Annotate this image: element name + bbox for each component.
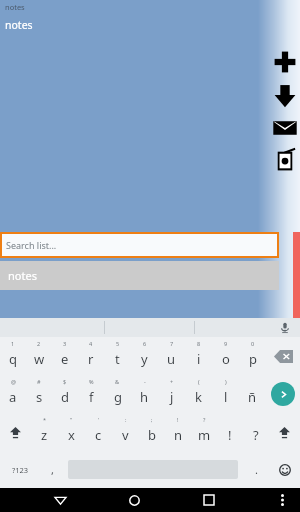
button[interactable]: ! — [217, 413, 243, 451]
button[interactable]: 2 — [26, 337, 52, 375]
button[interactable]: Recents — [195, 488, 223, 512]
staticText: ! — [228, 426, 232, 444]
staticText: ' — [98, 416, 100, 423]
staticText: $ — [63, 378, 67, 385]
button[interactable]: Home — [120, 488, 148, 512]
staticText: notes — [5, 18, 33, 32]
button[interactable]: ; — [139, 413, 165, 451]
button[interactable]: Enter — [271, 382, 295, 406]
button[interactable]: Add — [272, 49, 298, 75]
staticText: 6 — [143, 340, 147, 347]
staticText: r — [88, 350, 94, 368]
button[interactable]: ñ — [239, 375, 266, 413]
staticText: 1 — [11, 340, 15, 347]
button[interactable]: + — [158, 375, 185, 413]
button[interactable]: - — [131, 375, 158, 413]
button[interactable]: 6 — [131, 337, 158, 375]
staticText: 7 — [170, 340, 174, 347]
staticText: ? — [253, 426, 259, 444]
staticText: ñ — [248, 388, 257, 406]
button[interactable]: & — [104, 375, 131, 413]
staticText: l — [224, 388, 228, 406]
staticText: @ — [11, 378, 16, 385]
staticText: 3 — [63, 340, 67, 347]
button[interactable]: More options — [270, 488, 294, 512]
button[interactable]: $ — [52, 375, 78, 413]
staticText: c — [95, 426, 102, 444]
button[interactable]: Voice input — [278, 321, 292, 335]
button[interactable]: 4 — [78, 337, 104, 375]
staticText: w — [34, 350, 45, 368]
button[interactable]: " — [58, 413, 85, 451]
button[interactable]: Download — [272, 83, 298, 109]
staticText: s — [36, 388, 43, 406]
button[interactable]: Search list... — [0, 232, 279, 258]
button[interactable]: ( — [185, 375, 212, 413]
button[interactable]: ? — [243, 413, 269, 451]
staticText: 8 — [197, 340, 201, 347]
staticText: 9 — [224, 340, 228, 347]
button[interactable]: ! — [165, 413, 191, 451]
button[interactable]: 3 — [52, 337, 78, 375]
button[interactable]: @ — [0, 375, 26, 413]
staticText: x — [68, 426, 75, 444]
button[interactable]: Back — [46, 488, 74, 512]
button[interactable]: 0 — [239, 337, 266, 375]
staticText: ? — [203, 416, 206, 423]
staticText: 5 — [116, 340, 120, 347]
staticText: p — [249, 350, 257, 368]
button[interactable]: 8 — [185, 337, 212, 375]
button[interactable]: ) — [212, 375, 239, 413]
button[interactable]: 7 — [158, 337, 185, 375]
staticText: t — [115, 350, 120, 368]
button[interactable]: Email — [272, 115, 298, 141]
staticText: n — [174, 426, 183, 444]
staticText: q — [9, 350, 17, 368]
button[interactable]: , — [40, 451, 64, 488]
button[interactable]: Shift — [269, 413, 300, 451]
button[interactable]: notes — [0, 261, 279, 290]
staticText: ?123 — [12, 465, 29, 475]
staticText: v — [122, 426, 129, 444]
staticText: * — [43, 416, 47, 423]
button[interactable]: Backspace — [266, 337, 300, 375]
staticText: m — [198, 426, 211, 444]
staticText: f — [89, 388, 94, 406]
button[interactable]: 5 — [104, 337, 131, 375]
staticText: e — [61, 350, 69, 368]
staticText: a — [9, 388, 17, 406]
staticText: z — [41, 426, 48, 444]
button[interactable]: Shift — [0, 413, 31, 451]
button[interactable]: : — [112, 413, 139, 451]
button[interactable]: 9 — [212, 337, 239, 375]
staticText: ) — [225, 378, 227, 385]
button[interactable]: . — [242, 451, 270, 488]
staticText: o — [222, 350, 230, 368]
staticText: . — [255, 462, 258, 477]
staticText: y — [141, 350, 148, 368]
staticText: ( — [198, 378, 200, 385]
button[interactable]: 1 — [0, 337, 26, 375]
staticText: k — [195, 388, 202, 406]
staticText: " — [70, 416, 73, 423]
staticText: ; — [151, 416, 153, 423]
staticText: , — [51, 462, 54, 477]
staticText: j — [170, 388, 174, 406]
button[interactable]: # — [26, 375, 52, 413]
staticText: Search list... — [6, 239, 57, 251]
button[interactable]: ?123 — [0, 451, 40, 488]
staticText: 0 — [251, 340, 255, 347]
staticText: 4 — [89, 340, 93, 347]
staticText: notes — [5, 2, 25, 12]
button[interactable]: * — [31, 413, 58, 451]
button[interactable]: Paste note — [272, 147, 298, 173]
button[interactable]: Emoji — [270, 451, 300, 488]
button[interactable]: ? — [191, 413, 217, 451]
staticText: d — [61, 388, 69, 406]
button[interactable]: ' — [85, 413, 112, 451]
staticText: h — [140, 388, 149, 406]
button[interactable]: % — [78, 375, 104, 413]
staticText: + — [170, 378, 174, 385]
staticText: b — [148, 426, 156, 444]
